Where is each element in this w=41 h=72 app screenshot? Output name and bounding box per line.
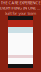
- staticText: THE CARE EXPERIENCE: [0, 0, 40, 5]
- staticText: EVERYTHING IN ONE PLACE: [0, 5, 41, 11]
- staticText: built for your team: [4, 11, 36, 16]
